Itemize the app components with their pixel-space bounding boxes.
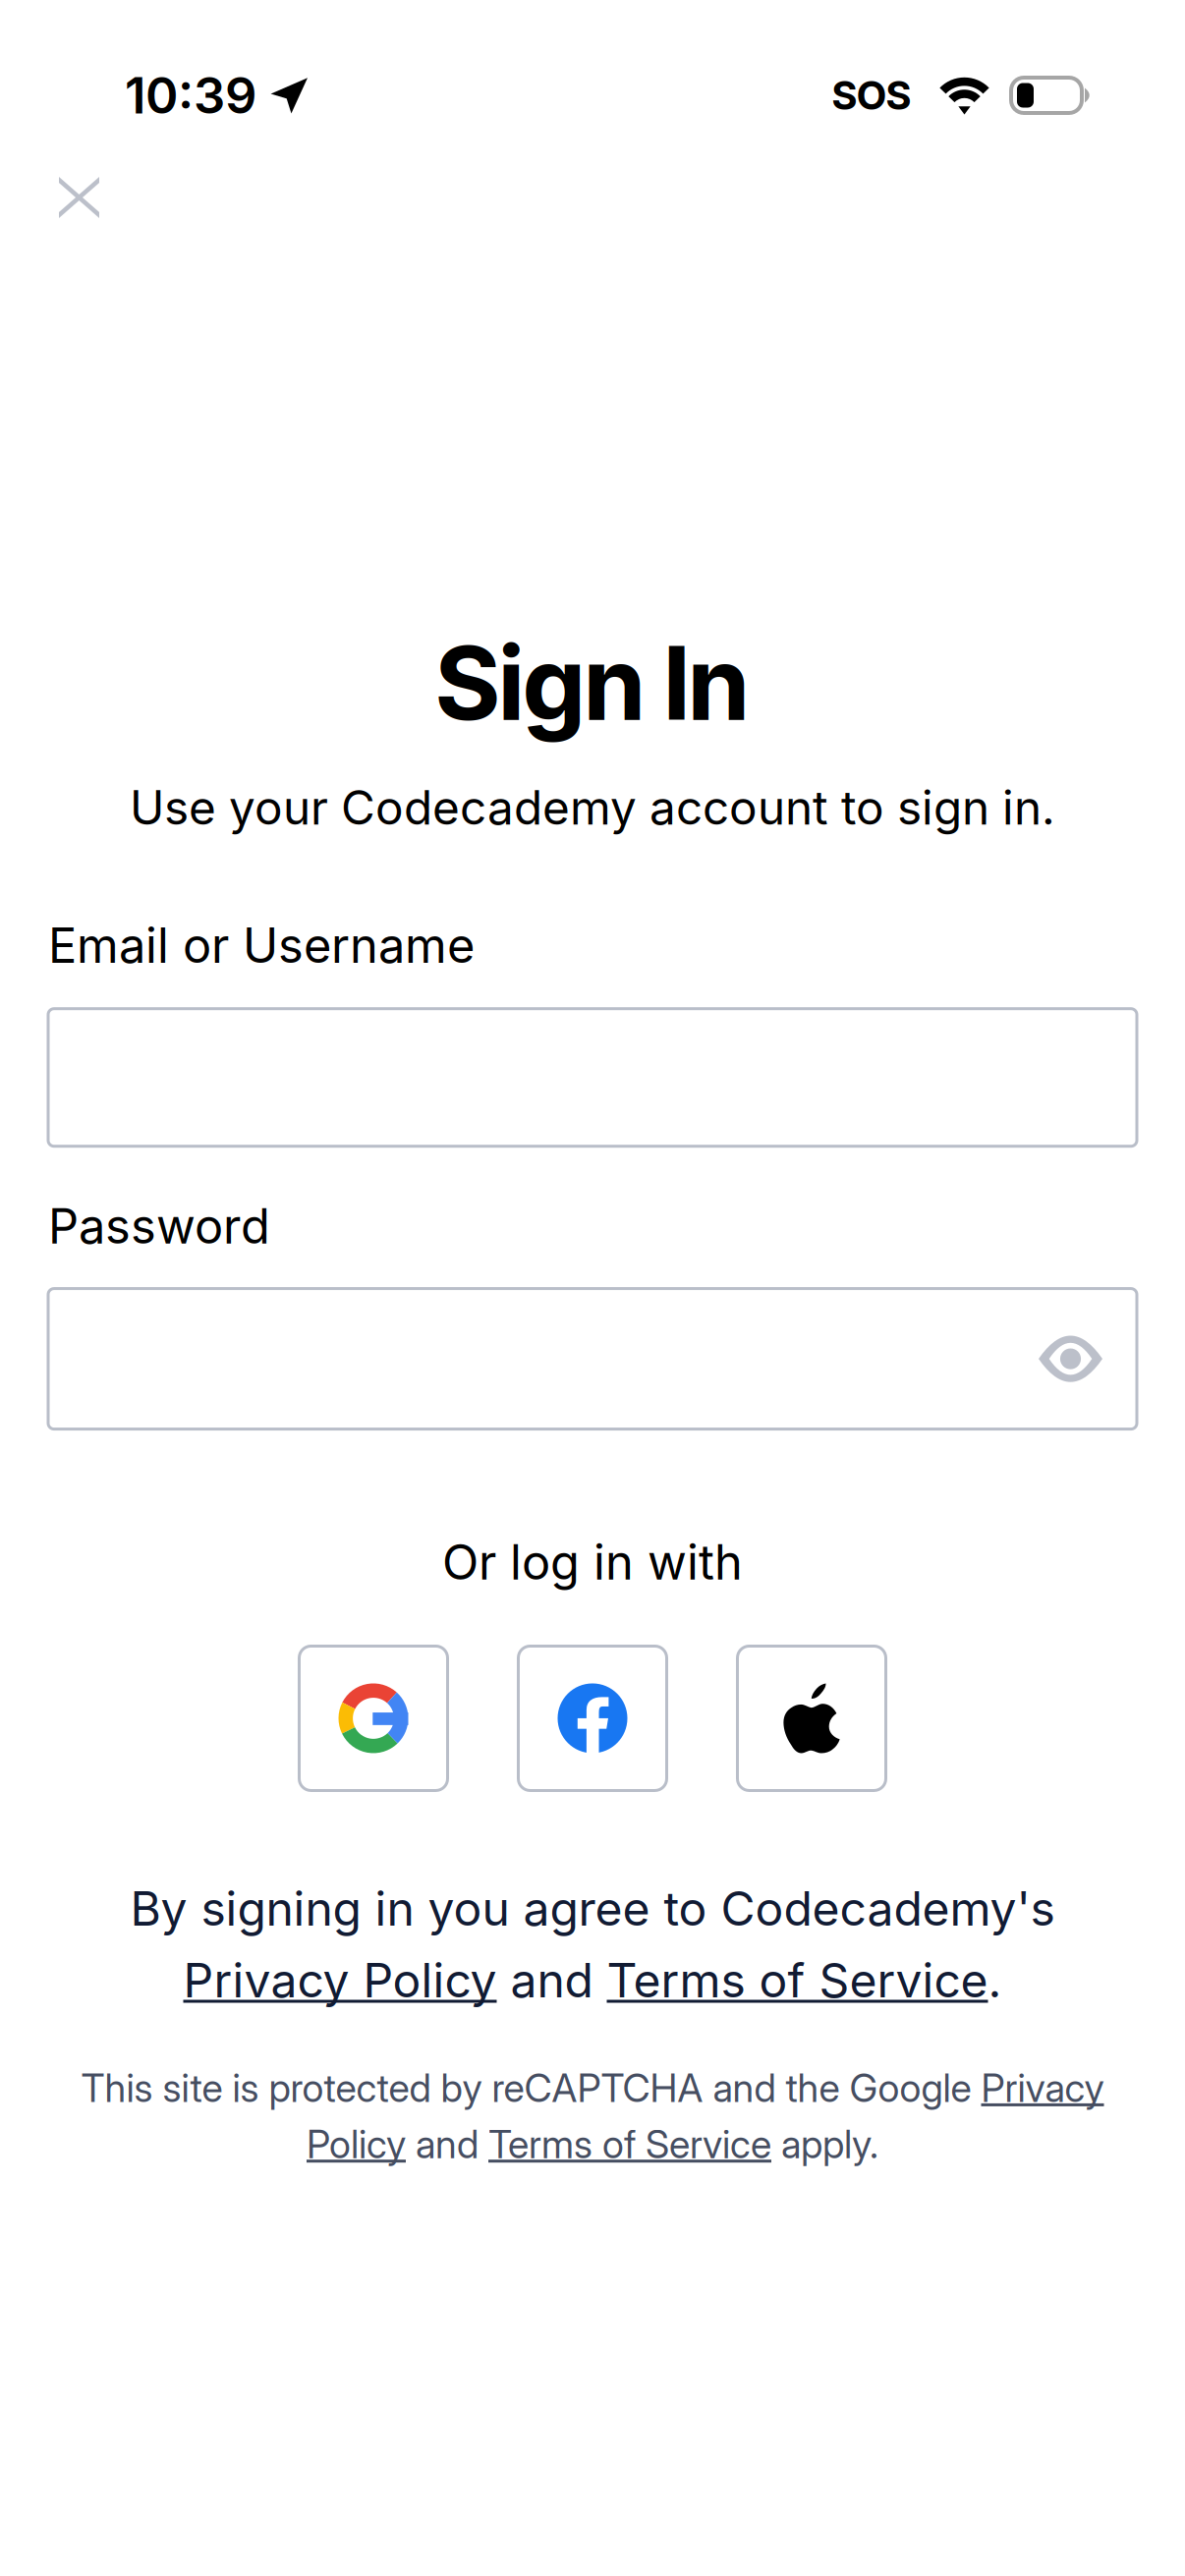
button[interactable]: Privacy (981, 2065, 1104, 2111)
staticText: Terms of Service (607, 1952, 988, 2009)
staticText: and (497, 1952, 607, 2009)
staticText: and (406, 2121, 488, 2167)
staticText: Use your Codecademy account to sign in. (130, 779, 1055, 836)
staticText: . (988, 1952, 1002, 2009)
button[interactable]: Close (37, 155, 121, 240)
button[interactable]: Sign in with Facebook (518, 1646, 667, 1791)
staticText: Email or Username (48, 916, 475, 974)
button[interactable]: Sign in with Google (299, 1646, 448, 1791)
button[interactable]: Terms of Service (488, 2121, 771, 2167)
staticText: apply. (771, 2121, 878, 2167)
button[interactable]: Policy (307, 2121, 406, 2167)
staticText: Or log in with (442, 1533, 743, 1591)
staticText: 10:39 (125, 65, 256, 125)
button[interactable]: Email or Username (48, 1009, 1137, 1146)
staticText: Privacy Policy (183, 1952, 497, 2009)
staticText: Terms of Service (488, 2121, 771, 2167)
button[interactable]: Sign in with Apple (737, 1646, 886, 1791)
staticText: Password (48, 1197, 270, 1255)
staticText: Sign In (436, 622, 749, 744)
staticText: By signing in you agree to Codecademy's (130, 1880, 1055, 1937)
button[interactable]: Password (48, 1289, 1137, 1429)
staticText: This site is protected by reCAPTCHA and … (81, 2065, 981, 2111)
button[interactable]: Terms of Service (607, 1952, 988, 2009)
button[interactable]: Show password (1019, 1317, 1122, 1401)
staticText: SOS (832, 72, 911, 119)
staticText: Policy (307, 2121, 406, 2167)
staticText: Privacy (981, 2065, 1104, 2111)
button[interactable]: Privacy Policy (183, 1952, 497, 2009)
